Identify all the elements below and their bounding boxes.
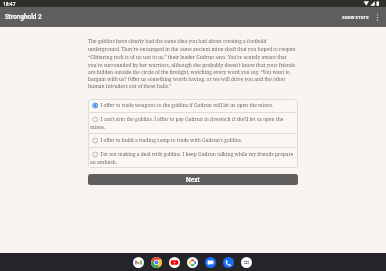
staticText: ●I offer to build a trading camp to trad… bbox=[90, 137, 243, 144]
staticText: ●I can't arm the goblins. I offer to pay… bbox=[90, 116, 295, 130]
button[interactable]: Messages bbox=[205, 257, 216, 268]
button[interactable]: ●I offer to trade weapons to the goblins… bbox=[88, 99, 298, 112]
button[interactable]: ●I offer to build a trading camp to trad… bbox=[88, 134, 298, 147]
button[interactable]: YouTube bbox=[169, 257, 180, 268]
button[interactable]: Photos bbox=[187, 257, 198, 268]
button[interactable]: SHOW STATS bbox=[339, 11, 370, 24]
staticText: The goblins have clearly had the same id… bbox=[88, 38, 298, 52]
staticText: ●I offer to trade weapons to the goblins… bbox=[90, 102, 274, 109]
button[interactable]: Gmail bbox=[133, 257, 144, 268]
button[interactable]: All apps bbox=[241, 257, 252, 268]
button[interactable]: Phone bbox=[223, 257, 234, 268]
button[interactable]: Chrome bbox=[151, 257, 162, 268]
staticText: ●I'm not making a deal with goblins. I k… bbox=[90, 151, 295, 165]
staticText: Stronghold 2 bbox=[5, 13, 42, 21]
staticText: SHOW STATS bbox=[342, 15, 369, 20]
button[interactable]: Next bbox=[88, 174, 298, 185]
button[interactable]: ●I can't arm the goblins. I offer to pay… bbox=[88, 113, 298, 133]
staticText: 18:47 bbox=[3, 1, 16, 7]
button[interactable]: More options bbox=[370, 10, 384, 24]
staticText: Next bbox=[186, 176, 200, 184]
staticText: “Glittering rock is of no use to us,” th… bbox=[88, 54, 298, 89]
button[interactable]: ●I'm not making a deal with goblins. I k… bbox=[88, 148, 298, 168]
